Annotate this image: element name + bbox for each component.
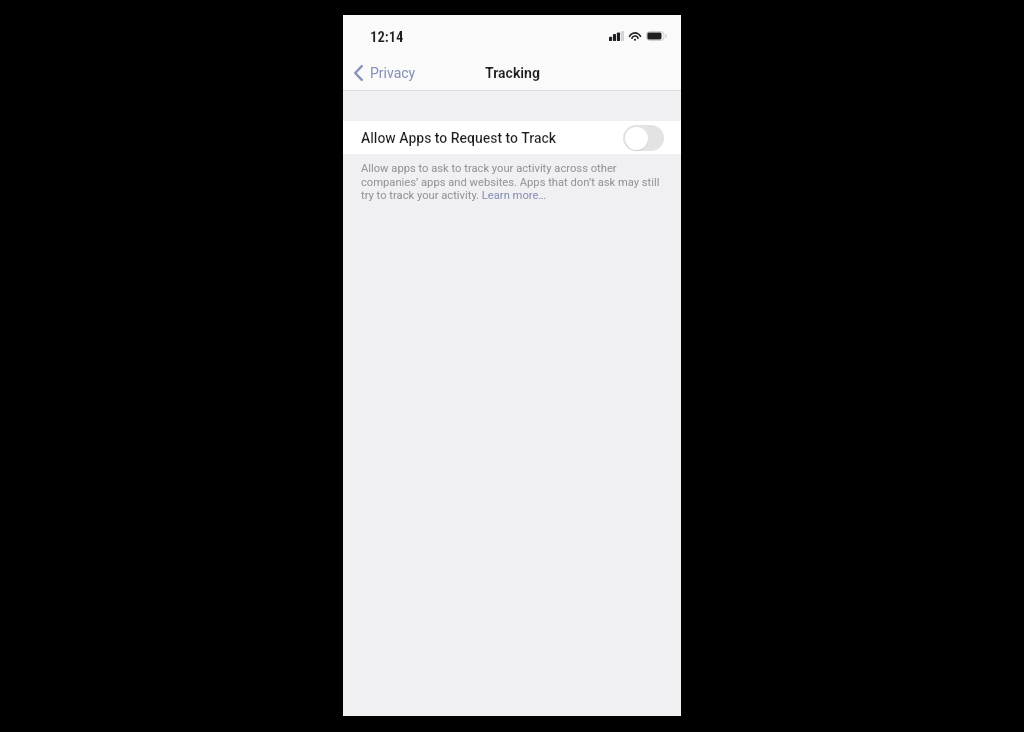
staticText: Allow apps to ask to track your activity…: [361, 162, 665, 201]
staticText: Allow Apps to Request to Track: [361, 130, 557, 146]
staticText: Tracking: [485, 65, 540, 81]
button[interactable]: Learn more: [425, 188, 488, 201]
button[interactable]: Privacy: [354, 65, 416, 81]
staticText: 12:14: [370, 28, 404, 45]
staticText: Privacy: [370, 65, 416, 81]
button[interactable]: Allow Apps to Request to Track toggle: [623, 125, 664, 151]
button[interactable]: Allow Apps to Request to Track: [343, 121, 681, 154]
